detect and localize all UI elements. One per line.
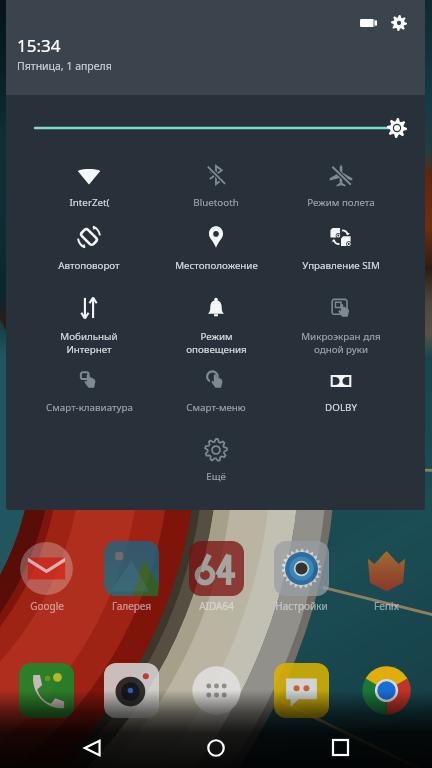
staticText: Микроэкран для одной руки <box>301 330 381 356</box>
staticText: Автоповорот <box>58 259 120 272</box>
staticText: InterZet( <box>69 196 110 209</box>
button[interactable]: Галерея <box>98 541 164 623</box>
staticText: Настройки <box>275 599 328 613</box>
staticText: Fenix <box>374 599 399 613</box>
button[interactable]: AIDA64 <box>183 541 249 623</box>
button[interactable] <box>279 153 403 205</box>
button[interactable]: Back <box>70 727 114 768</box>
staticText: Смарт-клавиатура <box>46 401 133 414</box>
button[interactable]: Brightness <box>6 105 425 151</box>
button[interactable] <box>27 286 151 348</box>
button[interactable] <box>154 286 278 348</box>
button[interactable]: Настройки <box>268 541 334 623</box>
button[interactable]: App <box>189 663 244 718</box>
staticText: Режим полета <box>307 196 375 209</box>
button[interactable]: Home <box>194 727 238 768</box>
button[interactable]: Settings <box>385 9 413 37</box>
button[interactable] <box>279 286 403 348</box>
button[interactable] <box>279 215 403 267</box>
button[interactable]: Recent apps <box>318 727 362 768</box>
staticText: Ещё <box>206 470 226 483</box>
button[interactable]: App <box>274 663 329 718</box>
staticText: Смарт-меню <box>186 401 246 414</box>
button[interactable]: Fenix <box>353 541 419 623</box>
button[interactable] <box>279 359 403 411</box>
staticText: Управление SIM <box>302 259 380 272</box>
button[interactable]: Battery <box>352 9 384 37</box>
staticText: Режим оповещения <box>186 330 247 356</box>
staticText: Галерея <box>112 599 151 613</box>
button[interactable]: App <box>359 663 414 718</box>
staticText: DOLBY <box>325 401 357 414</box>
button[interactable] <box>154 428 278 480</box>
button[interactable] <box>154 359 278 411</box>
staticText: Местоположение <box>175 259 258 272</box>
staticText: Bluetooth <box>193 196 239 209</box>
staticText: AIDA64 <box>199 599 234 613</box>
button[interactable]: Google <box>13 541 79 623</box>
button[interactable] <box>27 359 151 411</box>
button[interactable] <box>27 153 151 205</box>
button[interactable] <box>27 215 151 267</box>
button[interactable] <box>154 153 278 205</box>
staticText: 15:34 <box>17 34 61 57</box>
button[interactable] <box>154 215 278 267</box>
button[interactable]: App <box>104 663 159 718</box>
button[interactable]: App <box>19 663 74 718</box>
staticText: Google <box>30 599 64 613</box>
staticText: Мобильный Интернет <box>60 330 118 356</box>
staticText: Пятница, 1 апреля <box>17 59 112 73</box>
